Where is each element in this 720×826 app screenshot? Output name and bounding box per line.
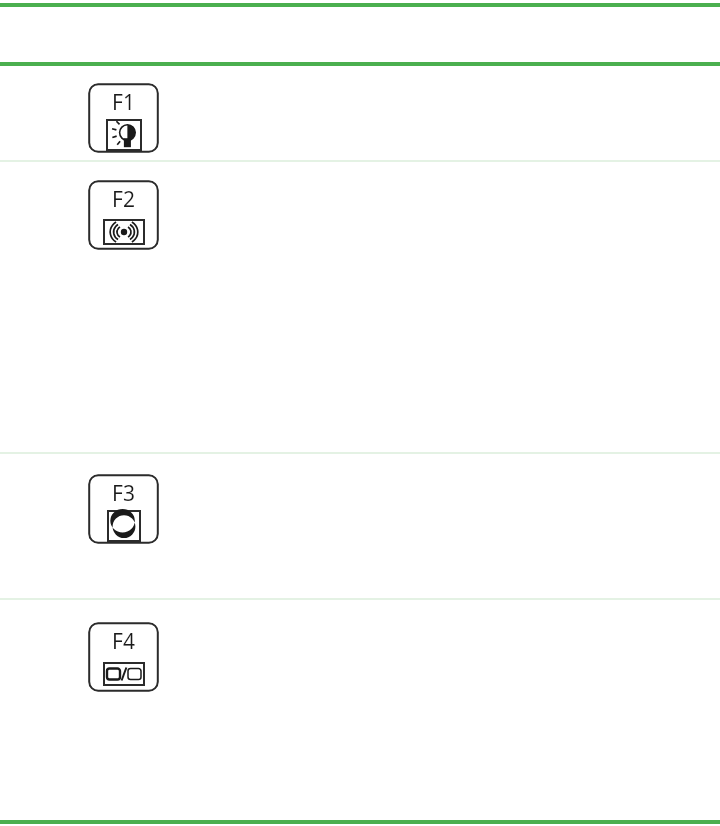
- button[interactable]: F3 key — sleep mode: [88, 474, 159, 544]
- button[interactable]: F2 key — toggle wireless radio: [88, 180, 159, 250]
- staticText: F4: [112, 627, 135, 656]
- staticText: F1: [112, 88, 135, 117]
- staticText: F3: [112, 479, 135, 508]
- button[interactable]: F1 key — adjust screen brightness: [88, 83, 159, 153]
- button[interactable]: F4 key — switch display output: [88, 622, 159, 692]
- staticText: F2: [112, 185, 135, 214]
